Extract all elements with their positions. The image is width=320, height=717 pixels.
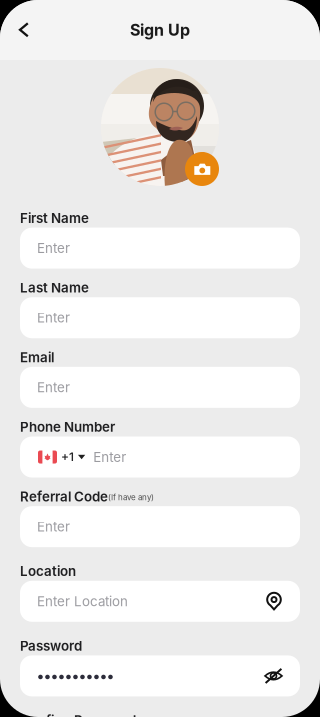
staticText: Location <box>20 563 76 579</box>
staticText: Enter Location <box>37 593 128 609</box>
staticText: Phone Number <box>20 419 115 435</box>
staticText: Referral Code <box>20 488 108 505</box>
staticText: Enter <box>37 519 70 535</box>
staticText: Password <box>20 638 82 654</box>
button[interactable]: Use current location <box>265 592 283 611</box>
staticText: Sign Up <box>130 20 190 40</box>
button[interactable]: Show password <box>264 667 283 684</box>
staticText: Email <box>20 349 54 365</box>
staticText: (If have any) <box>108 492 154 502</box>
button[interactable]: Back <box>2 8 46 52</box>
staticText: Last Name <box>20 280 89 296</box>
button[interactable]: Change profile photo <box>101 68 219 186</box>
staticText: Enter <box>37 379 70 395</box>
staticText: Enter <box>37 310 70 326</box>
staticText: +1 <box>61 450 74 464</box>
staticText: Confirm Password <box>20 712 136 717</box>
staticText: Enter <box>37 240 70 256</box>
button[interactable]: +1 <box>20 436 300 477</box>
staticText: First Name <box>20 210 89 226</box>
staticText: ••••••••••• <box>37 667 114 685</box>
staticText: Enter <box>93 449 126 465</box>
